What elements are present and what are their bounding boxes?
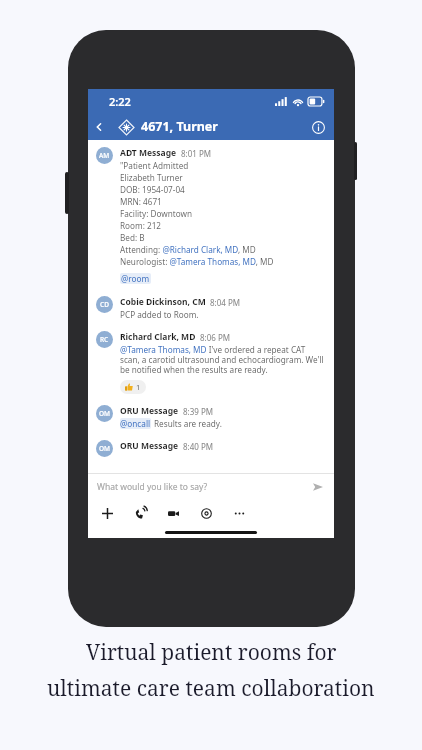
button[interactable]: What would you like to say? — [88, 474, 334, 500]
button[interactable]: RC — [96, 331, 326, 394]
staticText: 8:39 PM — [183, 406, 214, 417]
staticText: "Patient Admitted — [120, 160, 189, 171]
staticText: Neurologist: @Tamera Thomas, MD, MD — [120, 256, 274, 267]
other: Send — [311, 480, 325, 494]
staticText: 4671, Turner — [141, 118, 218, 135]
staticText: What would you like to say? — [97, 481, 208, 493]
staticText: 8:06 PM — [200, 332, 231, 343]
staticText: Facility: Downtown — [120, 208, 193, 219]
button[interactable]: CD — [96, 296, 326, 320]
staticText: MRN: 4671 — [120, 196, 162, 207]
button[interactable]: Room info — [308, 117, 328, 137]
staticText: Results are ready. — [154, 418, 222, 429]
staticText: Richard Clark, MD — [120, 331, 196, 343]
staticText: Attending: @Richard Clark, MD, MD — [120, 244, 256, 255]
button[interactable]: OM — [96, 405, 326, 429]
staticText: CD — [100, 300, 109, 309]
staticText: OM — [99, 409, 111, 418]
staticText: Elizabeth Turner — [120, 172, 183, 183]
staticText: @Tamera Thomas, MD I've ordered a repeat… — [120, 344, 326, 376]
staticText: RC — [100, 335, 109, 344]
staticText: @room — [121, 273, 150, 284]
button[interactable]: 1 — [120, 380, 146, 394]
button[interactable]: Mention — [198, 505, 214, 521]
staticText: 2:22 — [109, 94, 131, 109]
staticText: 8:01 PM — [181, 148, 212, 159]
button[interactable]: AM — [96, 147, 326, 284]
button[interactable]: Add attachment — [99, 505, 115, 521]
staticText: AM — [99, 151, 110, 160]
staticText: ultimate care team collaboration — [47, 674, 375, 703]
button[interactable]: OM — [96, 440, 326, 457]
staticText: OM — [99, 444, 111, 453]
staticText: ORU Message — [120, 405, 179, 417]
staticText: Cobie Dickinson, CM — [120, 296, 206, 308]
staticText: @oncall — [120, 418, 151, 429]
staticText: 8:04 PM — [210, 297, 241, 308]
staticText: Room: 212 — [120, 220, 162, 231]
button[interactable]: More options — [231, 505, 247, 521]
staticText: 8:40 PM — [183, 441, 214, 452]
staticText: ORU Message — [120, 440, 179, 452]
button[interactable]: Back — [88, 116, 110, 138]
staticText: ADT Message — [120, 147, 177, 159]
staticText: DOB: 1954-07-04 — [120, 184, 185, 195]
staticText: 1 — [136, 382, 141, 392]
staticText: Bed: B — [120, 232, 145, 243]
button[interactable]: Video call — [165, 505, 181, 521]
button[interactable]: Call — [132, 505, 148, 521]
staticText: Virtual patient rooms for — [86, 638, 337, 667]
staticText: PCP added to Room. — [120, 309, 199, 320]
